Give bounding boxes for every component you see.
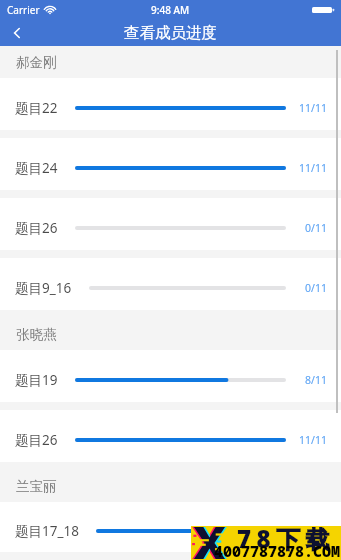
button[interactable]: 题目24 <box>0 138 341 198</box>
staticText: 题目19 <box>15 371 58 389</box>
staticText: 11/11 <box>286 161 327 175</box>
button[interactable]: 题目26 <box>0 198 341 258</box>
staticText: 兰宝丽 <box>16 478 57 495</box>
staticText: Carrier <box>7 3 40 17</box>
button[interactable]: 题目26 <box>0 410 341 470</box>
button[interactable]: 题目19 <box>0 350 341 410</box>
staticText: 查看成员进度 <box>124 23 217 43</box>
staticText: 题目26 <box>15 431 58 449</box>
staticText: 题目24 <box>15 159 58 177</box>
staticText: 11/11 <box>286 433 327 447</box>
staticText: 9:48 AM <box>151 3 190 17</box>
staticText: 题目22 <box>15 99 58 117</box>
staticText: 11/11 <box>286 101 327 115</box>
staticText: 8/11 <box>286 373 327 387</box>
staticText: 7/11 <box>286 524 327 538</box>
button[interactable]: 题目22 <box>0 78 341 138</box>
staticText: 郝金刚 <box>16 54 57 71</box>
staticText: 题目9_16 <box>15 279 72 297</box>
staticText: 题目26 <box>15 219 58 237</box>
staticText: 4007787878.COM <box>214 541 341 560</box>
button[interactable]: Back <box>0 20 34 46</box>
staticText: 题目17_18 <box>15 522 79 540</box>
staticText: 0/11 <box>286 221 327 235</box>
button[interactable]: 题目17_18 <box>0 502 341 560</box>
staticText: 0/11 <box>286 281 327 295</box>
staticText: 78下载 <box>237 522 336 555</box>
staticText: 张晓燕 <box>16 326 57 343</box>
button[interactable]: 题目9_16 <box>0 258 341 318</box>
